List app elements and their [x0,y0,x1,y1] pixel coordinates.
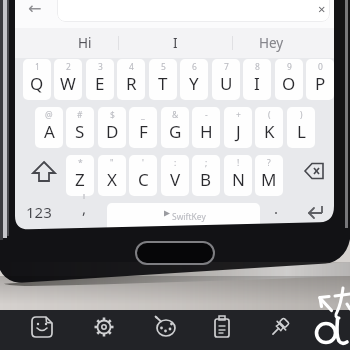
staticText: 5 [161,61,166,73]
button[interactable]: I [243,59,271,100]
staticText: 2 [66,61,71,73]
staticText: F [139,120,148,143]
staticText: * [78,157,83,169]
button[interactable]: Hi [57,28,113,58]
staticText: Hi [78,34,92,52]
button[interactable]: SwiftKey [107,203,260,232]
staticText: E [95,72,105,95]
button[interactable]: D [98,107,126,148]
button[interactable]: . [254,196,298,220]
button[interactable]: M [255,155,283,196]
staticText: 9 [287,61,292,73]
button[interactable]: T [149,59,177,100]
staticText: : [174,157,177,169]
button[interactable]: W [54,59,82,100]
button[interactable]: A [35,107,63,148]
button[interactable]: F [129,107,157,148]
button[interactable]: H [192,107,220,148]
button[interactable]: G [161,107,189,148]
staticText: 1 [35,61,40,73]
staticText: SwiftKey [172,211,206,223]
button[interactable] [150,312,182,342]
staticText: V [170,168,181,191]
button[interactable] [88,312,120,342]
staticText: Z [75,168,85,191]
button[interactable]: J [224,107,252,148]
staticText: 6 [192,61,197,73]
button[interactable]: P [306,59,334,100]
staticText: M [261,168,277,191]
staticText: P [315,72,326,95]
staticText: _ [141,109,145,121]
staticText: $ [110,109,115,121]
button[interactable]: S [66,107,94,148]
button[interactable]: L [287,107,315,148]
button[interactable]: C [129,155,157,196]
button[interactable]: Z [66,155,94,196]
button[interactable]: × [300,0,334,21]
staticText: # [77,109,83,121]
button[interactable]: B [192,155,220,196]
staticText: . [274,198,279,218]
staticText: K [264,120,275,143]
staticText: , [82,198,87,218]
staticText: ' [142,157,144,169]
button[interactable] [57,0,330,22]
staticText: O [282,72,296,95]
staticText: L [297,120,306,143]
staticText: T [158,72,168,95]
staticText: × [318,0,326,18]
staticText: 123 [26,202,52,222]
button[interactable]: O [275,59,303,100]
staticText: ! [237,157,240,169]
staticText: W [60,72,76,95]
button[interactable]: E [86,59,114,100]
button[interactable]: U [212,59,240,100]
staticText: C [138,168,149,191]
staticText: H [200,120,213,143]
button[interactable]: ← [15,0,57,20]
staticText: ? [267,157,271,169]
staticText: 4 [129,61,134,73]
button[interactable]: K [255,107,283,148]
button[interactable]: , [62,196,106,220]
button[interactable] [26,312,58,342]
staticText: + [236,109,241,121]
button[interactable]: Y [180,59,208,100]
staticText: Y [189,72,199,95]
staticText: A [44,120,55,143]
staticText: 7 [224,61,229,73]
button[interactable]: R [117,59,145,100]
staticText: X [107,168,117,191]
button[interactable]: Q [23,59,51,100]
staticText: ; [205,157,208,169]
staticText: @ [45,109,53,121]
button[interactable]: N [224,155,252,196]
staticText: 8 [255,61,260,73]
staticText: S [75,120,85,143]
button[interactable] [206,312,238,342]
button[interactable]: 123 [17,200,61,224]
staticText: " [110,157,114,169]
button[interactable]: V [161,155,189,196]
staticText: ) [300,109,303,121]
staticText: U [220,72,233,95]
button[interactable]: Hey [241,28,301,58]
staticText: I [254,72,260,95]
staticText: N [232,168,245,191]
staticText: B [200,168,212,191]
staticText: ← [28,0,42,18]
button[interactable]: I [145,28,205,58]
staticText: R [126,72,137,95]
staticText: ( [268,109,271,121]
staticText: D [106,120,119,143]
staticText: J [236,120,241,143]
staticText: & [172,109,179,121]
button[interactable]: X [98,155,126,196]
staticText: Q [30,72,44,95]
staticText: - [205,109,208,121]
staticText: 3 [98,61,103,73]
button[interactable] [264,312,296,342]
staticText: I [173,34,178,52]
staticText: G [169,120,182,143]
